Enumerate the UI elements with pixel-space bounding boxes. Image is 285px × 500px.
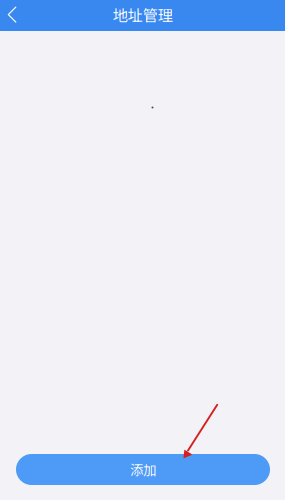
staticText: 添加 (130, 460, 156, 479)
button[interactable]: Back (0, 0, 34, 31)
button[interactable]: 添加 (16, 454, 270, 485)
staticText: 地址管理 (112, 3, 172, 26)
